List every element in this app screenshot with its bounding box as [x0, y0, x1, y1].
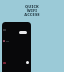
button[interactable]: Account	[26, 61, 29, 64]
staticText: QUICK WIFI ACCESS	[0, 4, 64, 18]
button[interactable]: Apps	[3, 62, 6, 64]
button[interactable]	[19, 31, 27, 34]
